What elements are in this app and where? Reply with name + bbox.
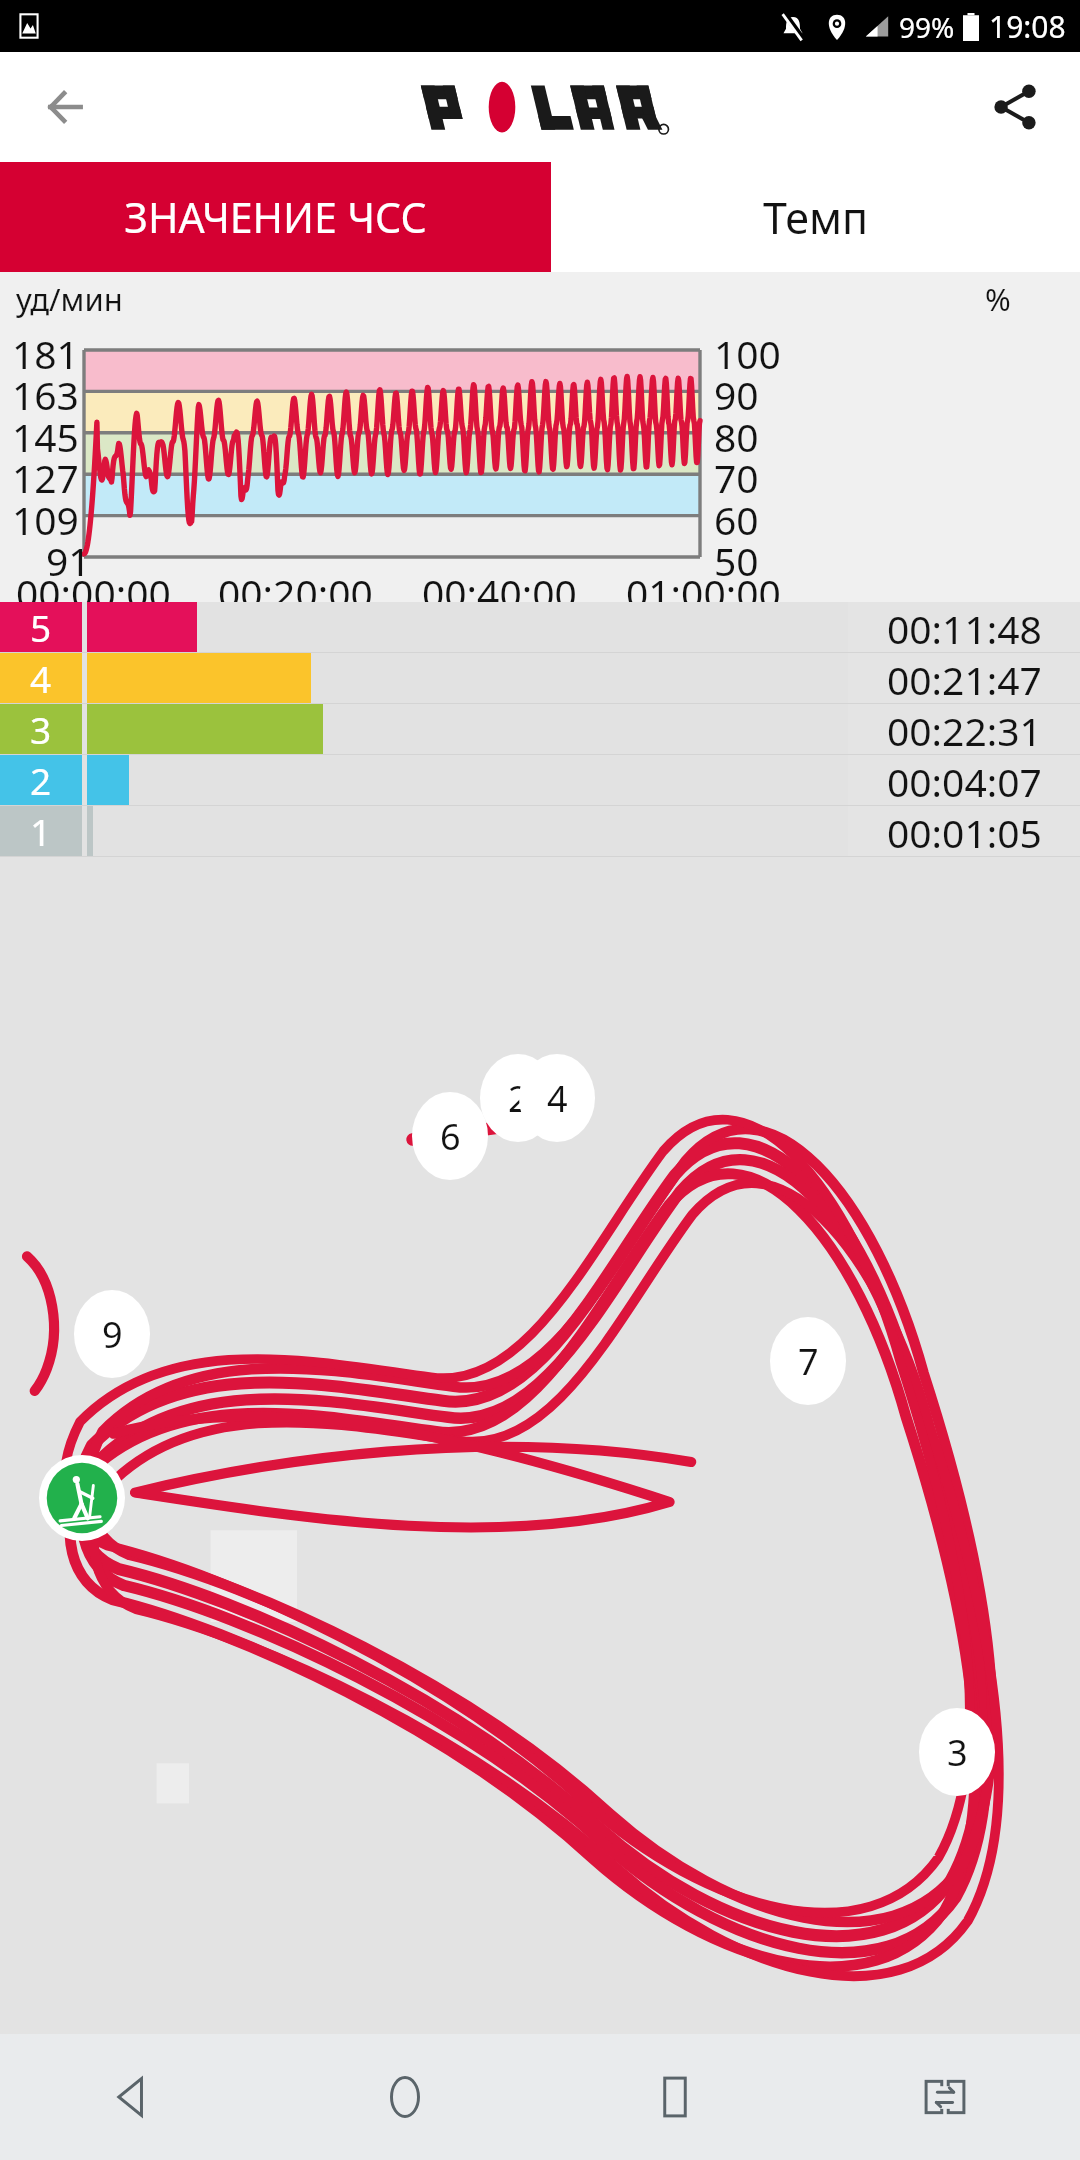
button[interactable]: Share — [950, 52, 1080, 162]
staticText: 00:11:48 — [887, 602, 1042, 652]
staticText: 5 — [30, 602, 52, 652]
staticText: % — [985, 278, 1011, 320]
button[interactable]: 3 — [0, 704, 1080, 754]
staticText: 2 — [508, 1074, 529, 1123]
button[interactable]: 2 — [0, 755, 1080, 805]
staticText: 100 — [714, 327, 781, 380]
staticText: 00:01:05 — [887, 806, 1042, 856]
staticText: 109 — [12, 493, 79, 546]
staticText: 00:40:00 — [422, 566, 577, 619]
staticText: 00:22:31 — [887, 704, 1042, 754]
button[interactable]: Recent apps — [540, 2034, 810, 2160]
button[interactable]: ЗНАЧЕНИЕ ЧСС — [0, 162, 551, 272]
staticText: 50 — [714, 534, 759, 587]
button[interactable]: 1 — [0, 806, 1080, 856]
staticText: 99% — [899, 8, 955, 46]
staticText: 163 — [12, 368, 79, 421]
staticText: 60 — [714, 493, 759, 546]
button[interactable]: 4 — [0, 653, 1080, 703]
staticText: 127 — [12, 451, 79, 504]
staticText: 7 — [798, 1337, 819, 1386]
button[interactable]: Темп — [551, 162, 1080, 272]
button[interactable]: 5 — [0, 602, 1080, 652]
button[interactable]: Home — [270, 2034, 540, 2160]
staticText: 19:08 — [989, 6, 1066, 47]
staticText: 00:21:47 — [887, 653, 1042, 703]
staticText: 181 — [12, 327, 79, 380]
button[interactable]: Back — [0, 52, 130, 162]
staticText: 00:20:00 — [218, 566, 373, 619]
staticText: 00:00:00 — [16, 566, 171, 619]
staticText: Темп — [763, 188, 868, 247]
staticText: 01:00:00 — [626, 566, 781, 619]
staticText: 4 — [30, 653, 52, 703]
staticText: 145 — [12, 410, 79, 463]
button[interactable]: Switch app — [810, 2034, 1080, 2160]
staticText: 4 — [547, 1074, 568, 1123]
staticText: 90 — [714, 368, 759, 421]
staticText: 9 — [102, 1310, 123, 1359]
staticText: 2 — [30, 755, 52, 805]
staticText: 1 — [30, 806, 52, 856]
staticText: 00:04:07 — [887, 755, 1042, 805]
staticText: 3 — [30, 704, 52, 754]
staticText: 80 — [714, 410, 759, 463]
staticText: 3 — [947, 1728, 968, 1777]
staticText: ЗНАЧЕНИЕ ЧСС — [124, 189, 427, 245]
staticText: уд/мин — [16, 278, 123, 320]
staticText: 70 — [714, 451, 759, 504]
staticText: 6 — [440, 1112, 461, 1161]
button[interactable]: Back — [0, 2034, 270, 2160]
staticText: 91 — [46, 534, 91, 587]
